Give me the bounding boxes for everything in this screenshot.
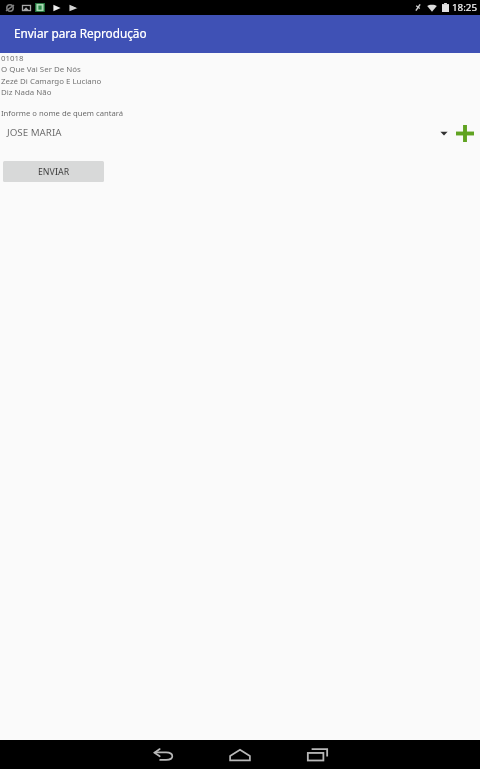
- button[interactable]: JOSE MARIA: [0, 122, 453, 146]
- button[interactable]: Home: [220, 740, 260, 769]
- staticText: O Que Vai Ser De Nós: [1, 64, 81, 75]
- staticText: Diz Nada Não: [1, 87, 52, 98]
- staticText: 18:25: [452, 1, 478, 14]
- staticText: ENVIAR: [38, 166, 70, 178]
- button[interactable]: ENVIAR: [3, 161, 104, 182]
- button[interactable]: Recents: [297, 740, 337, 769]
- staticText: Enviar para Reprodução: [14, 25, 147, 41]
- staticText: Zezé Di Camargo E Luciano: [1, 76, 102, 87]
- button[interactable]: Adicionar: [453, 122, 477, 146]
- staticText: Informe o nome de quem cantará: [1, 108, 124, 118]
- button[interactable]: Back: [143, 740, 183, 769]
- staticText: 01018: [1, 53, 24, 64]
- staticText: JOSE MARIA: [7, 126, 62, 139]
